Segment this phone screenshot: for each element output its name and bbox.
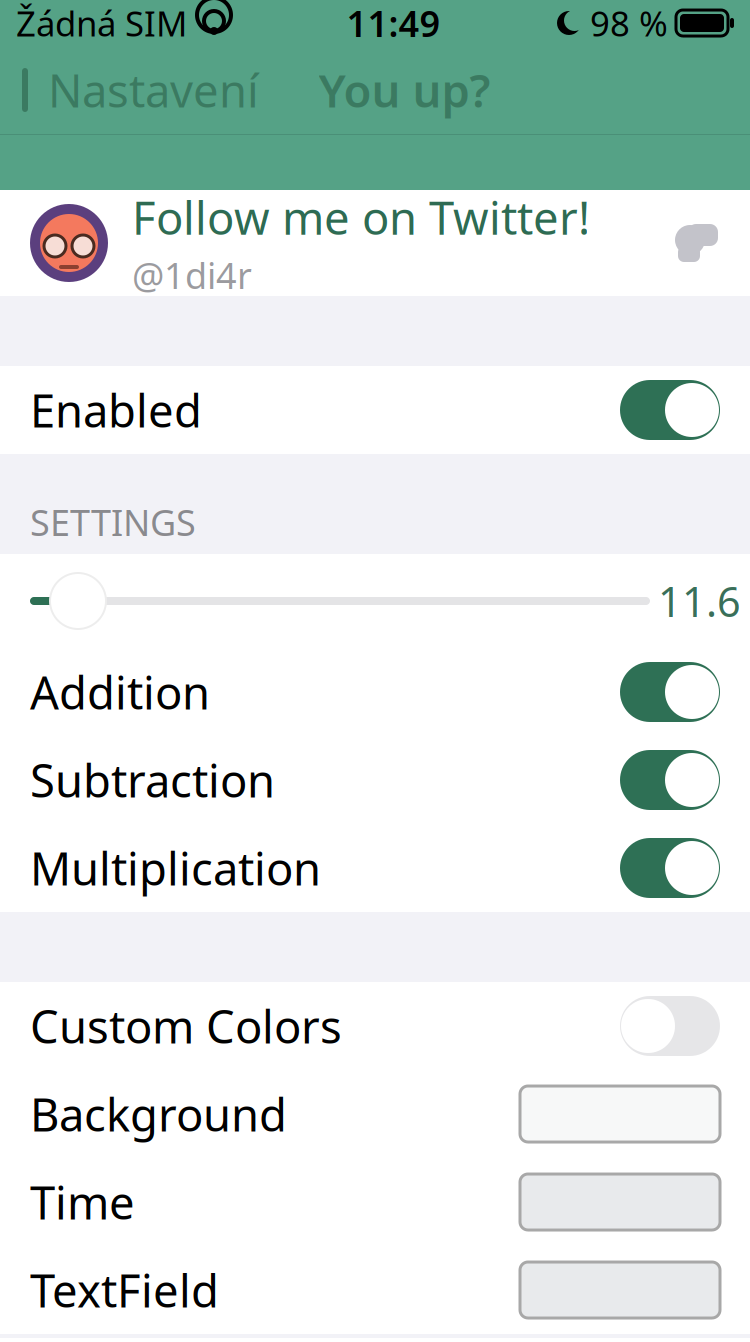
staticText: Enabled (30, 380, 202, 440)
button[interactable]: Custom Colors (0, 982, 750, 1070)
staticText: Addition (30, 662, 210, 722)
staticText: 11:49 (346, 0, 440, 47)
button[interactable]: Follow me on Twitter! (0, 190, 750, 296)
staticText: Subtraction (30, 750, 275, 810)
button[interactable]: Subtraction (0, 736, 750, 824)
staticText: TextField (30, 1260, 219, 1320)
staticText: Custom Colors (30, 996, 342, 1056)
staticText: 98 % (590, 0, 668, 46)
staticText: Time (30, 1172, 135, 1232)
staticText: Background (30, 1084, 287, 1144)
button[interactable]: Enabled (0, 366, 750, 454)
staticText: 11.6 (658, 574, 741, 628)
staticText: Multiplication (30, 838, 321, 898)
staticText: Žádná SIM (16, 0, 187, 46)
staticText: You up? (318, 60, 490, 120)
button[interactable]: Multiplication (0, 824, 750, 912)
button[interactable]: Background (0, 1070, 750, 1158)
staticText: Follow me on Twitter! (132, 187, 590, 247)
staticText: Nastavení (48, 60, 259, 120)
button[interactable]: Addition (0, 648, 750, 736)
staticText: @1di4r (132, 251, 252, 299)
button[interactable]: TextField (0, 1246, 750, 1334)
staticText: SETTINGS (30, 498, 196, 546)
button[interactable]: Nastavení (0, 46, 259, 134)
button[interactable]: Time (0, 1158, 750, 1246)
